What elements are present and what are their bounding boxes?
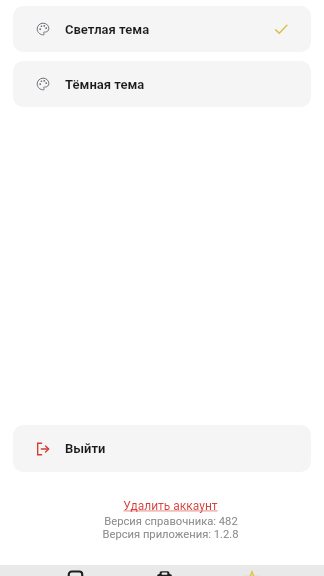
staticText: Удалить аккаунт [123, 499, 218, 513]
staticText: Светлая тема [65, 22, 150, 37]
staticText: Версия приложения: 1.2.8 [102, 528, 239, 541]
button[interactable]: Выйти [13, 425, 311, 472]
button[interactable]: Автомобили [120, 565, 208, 576]
staticText: Версия справочника: 482 [104, 515, 238, 528]
button[interactable]: Тёмная тема [13, 61, 311, 107]
button[interactable]: Светлая тема [13, 6, 311, 52]
staticText: Тёмная тема [65, 77, 145, 92]
button[interactable]: Избранное [208, 565, 296, 576]
button[interactable]: Удалить аккаунт [123, 499, 218, 513]
staticText: Выйти [65, 441, 106, 456]
button[interactable]: Справочник [31, 565, 120, 576]
